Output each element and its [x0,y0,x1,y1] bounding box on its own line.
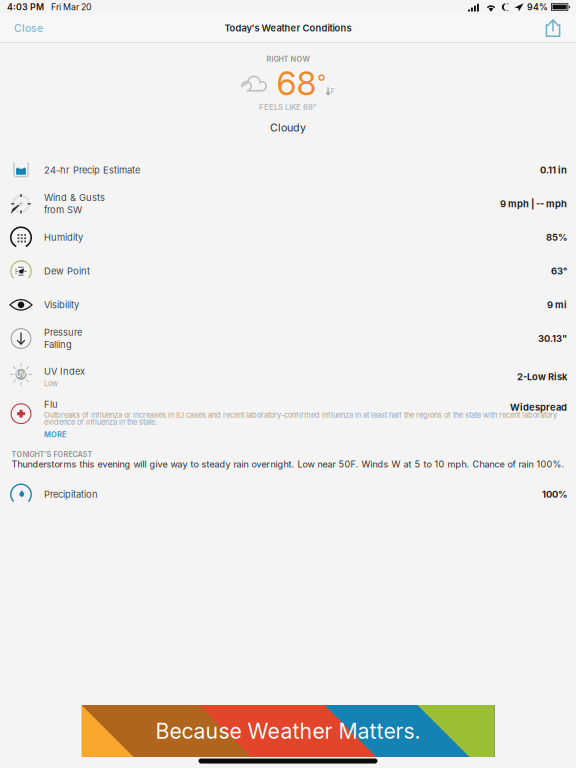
button[interactable]: UV [0,355,576,393]
staticText: Dew Point [44,265,90,277]
staticText: 2-Low Risk [517,371,567,383]
button[interactable]: Close [0,14,57,41]
staticText: Humidity [44,232,83,243]
button[interactable]: Wind & Gusts [0,187,576,221]
staticText: Outbreaks of influenza or increases in I… [44,410,557,427]
button[interactable]: Humidity [0,221,576,254]
staticText: 68 [277,63,317,103]
staticText: Because Weather Matters. [155,718,420,744]
staticText: Fri Mar 20 [51,2,92,12]
button[interactable]: Visibility [0,288,576,322]
staticText: 63° [551,265,567,277]
staticText: from SW [44,204,82,215]
staticText: Close [14,21,43,34]
staticText: 30.13" [538,333,567,344]
staticText: Falling [44,339,72,350]
staticText: Flu [44,399,58,410]
staticText: 0.11 in [540,164,567,176]
staticText: 100% [542,489,567,500]
staticText: Cloudy [270,121,306,134]
staticText: ° [317,69,326,93]
staticText: MORE [44,430,67,439]
staticText: UV Index [44,366,85,377]
staticText: UV [16,370,26,379]
staticText: Wind & Gusts [44,192,105,203]
staticText: Thunderstorms this evening will give way… [11,459,564,470]
staticText: Pressure [44,327,82,338]
staticText: Widespread [510,402,567,413]
button[interactable]: Pressure [0,322,576,355]
staticText: 85% [546,232,567,243]
staticText: 9 mi [547,299,567,310]
staticText: Low [44,379,58,388]
staticText: RIGHT NOW [266,55,309,64]
button[interactable]: Precipitation [0,478,576,511]
staticText: 94% [527,2,548,12]
staticText: TONIGHT'S FORECAST [11,450,92,459]
staticText: FEELS LIKE 68° [259,102,317,112]
staticText: Precipitation [44,489,98,500]
button[interactable]: Share [529,15,576,41]
button[interactable]: Dew Point [0,254,576,288]
staticText: 9 mph | -- mph [500,198,567,209]
staticText: F [330,87,334,96]
staticText: Today's Weather Conditions [224,22,351,34]
staticText: Visibility [44,299,79,310]
staticText: 24-hr Precip Estimate [44,164,140,176]
button[interactable]: 24-hr Precip Estimate [0,153,576,187]
staticText: 4:03 PM [7,2,44,12]
button[interactable]: Because Weather Matters [81,705,494,757]
button[interactable]: Widespread [0,393,576,441]
